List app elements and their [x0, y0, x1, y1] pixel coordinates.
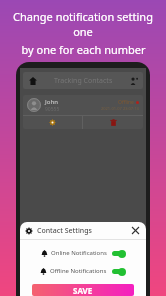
- button[interactable]: Home: [27, 75, 38, 86]
- staticText: Offline: [118, 99, 134, 106]
- staticText: 90555: [45, 106, 60, 113]
- staticText: John: [45, 98, 58, 106]
- staticText: Offline Notifications: [50, 267, 107, 275]
- button[interactable]: Offline Notifications: [20, 265, 146, 277]
- staticText: by one for each number: [21, 42, 146, 57]
- button[interactable]: Settings: [23, 116, 82, 129]
- button[interactable]: Online Notifications: [20, 247, 146, 259]
- button[interactable]: John: [23, 95, 143, 115]
- staticText: Tracking Contacts: [54, 76, 113, 86]
- staticText: Change notification setting one: [6, 9, 160, 39]
- staticText: 2021-01-07 23:07:13: [101, 106, 139, 111]
- staticText: Online Notifications: [51, 249, 107, 257]
- button[interactable]: SAVE: [32, 284, 134, 296]
- staticText: Contact Settings: [37, 226, 92, 236]
- button[interactable]: Delete: [83, 116, 143, 129]
- button[interactable]: Add contact: [128, 75, 139, 86]
- staticText: SAVE: [73, 285, 93, 296]
- button[interactable]: Close: [130, 225, 141, 236]
